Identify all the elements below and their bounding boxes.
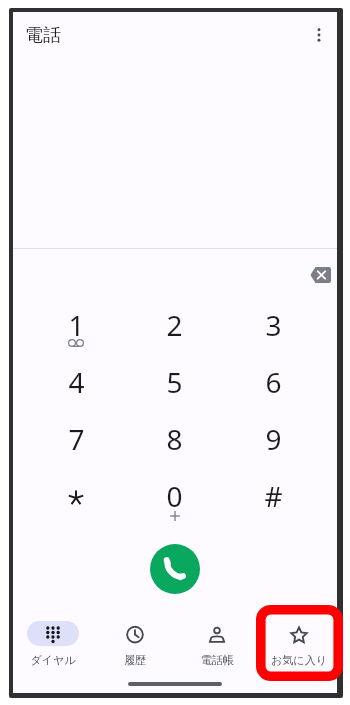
staticText: お気に入り [271, 653, 327, 667]
button[interactable]: 7 [27, 412, 125, 469]
button[interactable]: 1 [27, 298, 125, 355]
button[interactable]: 4 [27, 355, 125, 412]
button[interactable]: 6 [224, 355, 323, 412]
staticText: 9 [265, 420, 282, 458]
button[interactable]: 3 [224, 298, 323, 355]
button[interactable]: # [224, 469, 323, 526]
button[interactable]: Call [150, 544, 200, 594]
button[interactable]: 履歴 [94, 609, 176, 689]
staticText: 6 [265, 363, 282, 401]
staticText: 電話 [25, 24, 61, 47]
staticText: # [264, 477, 283, 515]
button[interactable]: Backspace [300, 255, 340, 295]
staticText: 5 [166, 363, 183, 401]
button[interactable]: 9 [224, 412, 323, 469]
staticText: ダイヤル [30, 653, 76, 667]
staticText: 8 [166, 420, 183, 458]
button[interactable]: 電話帳 [176, 609, 258, 689]
staticText: 2 [166, 306, 183, 344]
staticText: 電話帳 [201, 653, 234, 667]
staticText: 4 [68, 363, 85, 401]
button[interactable]: お気に入り [258, 609, 340, 689]
button[interactable]: 8 [125, 412, 224, 469]
staticText: 3 [265, 306, 282, 344]
staticText: 0 [166, 477, 183, 515]
staticText: 履歴 [124, 653, 146, 667]
button[interactable]: 0 [125, 469, 224, 526]
button[interactable]: ダイヤル [12, 609, 94, 689]
button[interactable]: 5 [125, 355, 224, 412]
button[interactable] [27, 469, 125, 526]
staticText: 7 [68, 420, 85, 458]
button[interactable]: 2 [125, 298, 224, 355]
button[interactable]: More options [297, 14, 337, 54]
staticText: 1 [68, 306, 85, 344]
